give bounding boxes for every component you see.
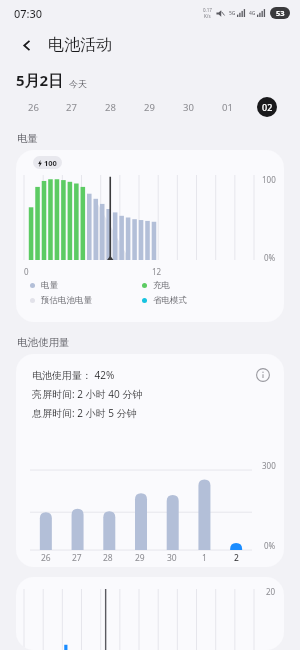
staticText: 100 xyxy=(262,174,276,185)
staticText: 27 xyxy=(66,101,77,114)
staticText: 28 xyxy=(105,101,116,114)
button[interactable]: 02 xyxy=(247,92,286,122)
staticText: 1 xyxy=(202,552,207,564)
staticText: 27 xyxy=(72,552,82,564)
button[interactable]: 100 xyxy=(16,150,284,322)
staticText: 30 xyxy=(167,552,177,564)
staticText: 电池活动 xyxy=(48,35,112,55)
staticText: K/s xyxy=(204,13,211,19)
staticText: 26 xyxy=(28,101,39,114)
staticText: 300 xyxy=(262,460,276,471)
button[interactable]: 28 xyxy=(91,92,130,122)
button[interactable]: 29 xyxy=(130,92,169,122)
staticText: 2 xyxy=(234,552,239,564)
staticText: 26 xyxy=(41,552,51,564)
button[interactable]: 01 xyxy=(208,92,247,122)
staticText: 28 xyxy=(103,552,113,564)
staticText: 20 xyxy=(266,586,276,597)
staticText: 电量 xyxy=(41,280,58,291)
staticText: 电量 xyxy=(17,132,38,145)
staticText: 0 xyxy=(24,266,29,277)
staticText: 息屏时间: 2 小时 5 分钟 xyxy=(32,406,137,420)
button[interactable]: 20 xyxy=(16,577,284,650)
button[interactable]: Info xyxy=(254,366,272,384)
staticText: 07:30 xyxy=(14,6,43,21)
staticText: 亮屏时间: 2 小时 40 分钟 xyxy=(32,387,143,401)
staticText: 今天 xyxy=(69,78,87,89)
staticText: 5G xyxy=(229,10,236,17)
staticText: 0% xyxy=(264,540,276,551)
staticText: 29 xyxy=(144,101,155,114)
staticText: 01 xyxy=(222,101,233,114)
staticText: 4G xyxy=(249,10,256,17)
staticText: 预估电池电量 xyxy=(41,295,92,306)
staticText: 12 xyxy=(152,266,162,277)
staticText: 充电 xyxy=(153,280,170,291)
staticText: 电池使用量 xyxy=(17,336,70,349)
button[interactable]: 26 xyxy=(14,92,52,122)
button[interactable]: 30 xyxy=(169,92,208,122)
button[interactable]: 电池使用量： 42% xyxy=(16,354,284,567)
staticText: 02 xyxy=(262,101,273,113)
staticText: 30 xyxy=(183,101,194,114)
staticText: 0% xyxy=(264,252,276,263)
staticText: 电池使用量： 42% xyxy=(32,368,115,382)
staticText: 5月2日 xyxy=(16,70,64,90)
staticText: 29 xyxy=(135,552,145,564)
staticText: 100 xyxy=(44,158,57,168)
button[interactable]: 27 xyxy=(52,92,91,122)
staticText: 0.17 xyxy=(203,7,212,13)
staticText: 53 xyxy=(276,8,285,18)
button[interactable]: Back xyxy=(14,32,40,58)
staticText: 省电模式 xyxy=(153,295,187,306)
